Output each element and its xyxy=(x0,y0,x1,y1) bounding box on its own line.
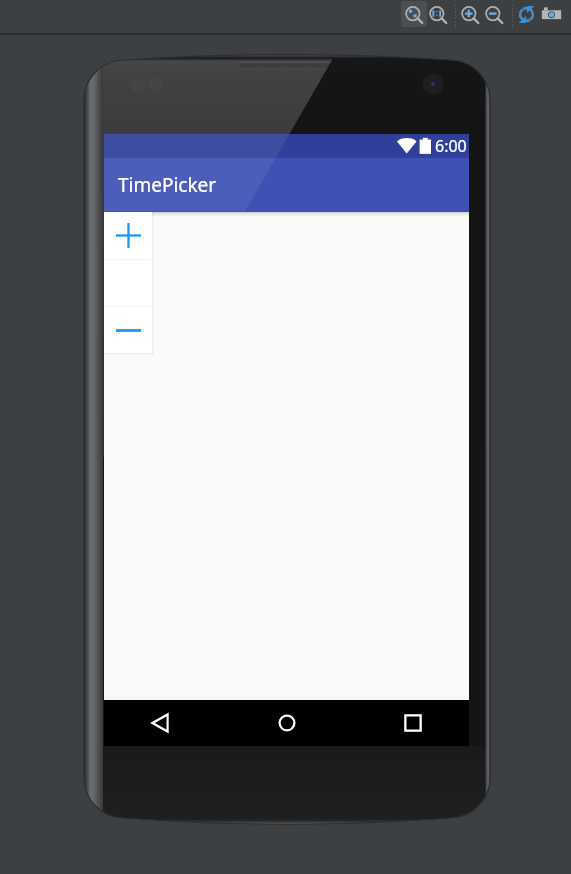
button[interactable]: Decrement xyxy=(104,307,152,353)
staticText: 6:00 xyxy=(435,135,467,157)
button[interactable]: Home xyxy=(257,700,317,746)
button[interactable]: Screenshot xyxy=(538,1,564,27)
button[interactable]: Zoom to actual size xyxy=(425,1,451,27)
button[interactable]: Recent apps xyxy=(383,700,443,746)
button[interactable]: Refresh xyxy=(513,1,539,27)
button[interactable]: Zoom to fit xyxy=(401,1,427,27)
button[interactable]: Increment xyxy=(104,212,152,259)
button[interactable]: Zoom out xyxy=(481,1,507,27)
button[interactable]: Back xyxy=(130,700,190,746)
button[interactable]: Zoom in xyxy=(457,1,483,27)
staticText: TimePicker xyxy=(118,172,217,198)
